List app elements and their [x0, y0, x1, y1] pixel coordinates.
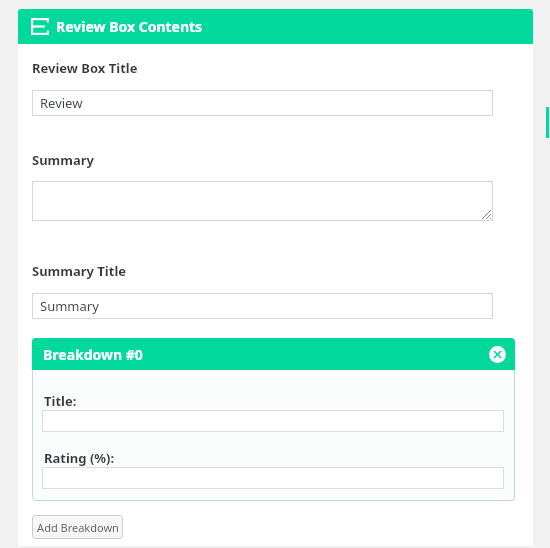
staticText: Summary Title — [32, 262, 127, 280]
staticText: Add Breakdown — [37, 520, 119, 535]
staticText: Review Box Contents — [56, 17, 203, 36]
staticText: Title: — [44, 392, 77, 410]
button[interactable] — [32, 181, 493, 221]
staticText: Review — [40, 94, 83, 112]
button[interactable] — [42, 410, 504, 432]
button[interactable]: Add Breakdown — [32, 515, 123, 539]
other: Panel icon — [31, 18, 49, 35]
button[interactable] — [42, 467, 504, 489]
button[interactable]: Panel icon — [18, 9, 533, 44]
staticText: Summary — [40, 297, 99, 315]
staticText: Breakdown #0 — [43, 345, 143, 364]
button[interactable]: Review — [32, 90, 493, 116]
staticText: Rating (%): — [44, 449, 115, 467]
button[interactable]: Remove breakdown — [489, 346, 506, 363]
staticText: Review Box Title — [32, 59, 138, 77]
button[interactable]: Breakdown #0 — [32, 338, 515, 370]
button[interactable]: Summary — [32, 293, 493, 319]
staticText: Summary — [32, 151, 94, 169]
